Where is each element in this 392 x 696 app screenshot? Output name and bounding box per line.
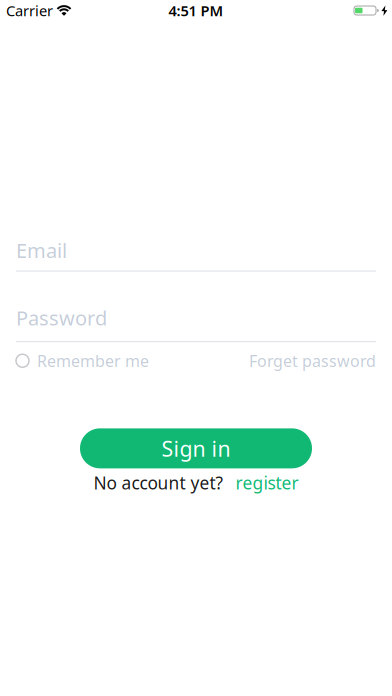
button[interactable]: register [235, 471, 298, 494]
button[interactable]: Forget password [249, 350, 376, 371]
staticText: Remember me [37, 350, 149, 371]
button[interactable]: Remember me [16, 350, 149, 371]
staticText: Email [16, 237, 67, 264]
staticText: Forget password [249, 350, 376, 371]
staticText: register [235, 471, 298, 494]
staticText: No account yet? [93, 471, 223, 494]
button[interactable]: Sign in [80, 428, 312, 468]
staticText: Sign in [161, 434, 230, 462]
staticText: Carrier [6, 1, 53, 20]
staticText: Password [16, 305, 107, 331]
staticText: 4:51 PM [168, 1, 223, 20]
